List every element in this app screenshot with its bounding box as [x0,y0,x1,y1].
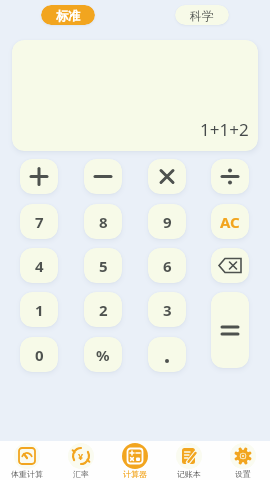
staticText: 1 [35,300,44,320]
button[interactable]: % [84,337,122,372]
button[interactable] [148,159,186,194]
staticText: % [96,345,110,365]
staticText: 标准 [56,8,80,23]
button[interactable]: 0 [20,337,58,372]
button[interactable]: 计算器 [113,441,157,480]
button[interactable]: 4 [20,248,58,283]
button[interactable] [211,159,249,194]
button[interactable] [20,159,58,194]
staticText: 2 [99,300,108,320]
button[interactable]: 1 [20,292,58,327]
button[interactable] [211,292,249,368]
button[interactable]: ¥ [59,441,103,480]
button[interactable]: 体重计算 [5,441,49,480]
staticText: 记账本 [177,469,201,479]
button[interactable]: 科学 [175,5,229,25]
staticText: 6 [163,256,172,276]
staticText: 9 [163,212,172,232]
staticText: 4 [35,256,44,276]
staticText: ¥ [78,450,84,462]
staticText: 科学 [190,8,214,23]
staticText: 汇率 [73,469,89,479]
button[interactable]: 7 [20,204,58,239]
button[interactable]: 3 [148,292,186,327]
button[interactable]: 5 [84,248,122,283]
staticText: 体重计算 [11,469,43,479]
button[interactable]: 6 [148,248,186,283]
button[interactable]: 设置 [221,441,265,480]
button[interactable] [211,248,249,283]
button[interactable]: 9 [148,204,186,239]
staticText: 7 [35,212,44,232]
staticText: 设置 [235,469,251,479]
button[interactable]: 标准 [41,5,95,25]
button[interactable] [84,159,122,194]
button[interactable] [148,337,186,372]
button[interactable]: 2 [84,292,122,327]
staticText: 3 [163,300,172,320]
staticText: 8 [99,212,108,232]
button[interactable]: 8 [84,204,122,239]
button[interactable]: AC [211,204,249,239]
staticText: 5 [99,256,108,276]
staticText: 0 [35,345,44,365]
staticText: 计算器 [123,469,147,479]
staticText: 1+1+2 [200,118,249,141]
staticText: AC [220,212,240,232]
button[interactable]: 记账本 [167,441,211,480]
